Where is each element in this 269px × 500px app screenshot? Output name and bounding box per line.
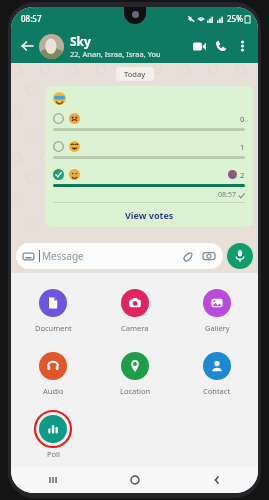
- staticText: 08:57: [218, 190, 236, 200]
- button[interactable]: Camera: [114, 282, 156, 335]
- staticText: Sky: [70, 33, 91, 49]
- staticText: 08:57: [21, 13, 42, 24]
- button[interactable]: Audio: [32, 345, 74, 398]
- staticText: Audio: [43, 386, 64, 396]
- staticText: View votes: [125, 209, 174, 221]
- button[interactable]: Recent apps: [11, 467, 94, 493]
- staticText: 22, Anan, Israa, Israa, You: [70, 49, 161, 59]
- button[interactable]: Attach: [181, 249, 195, 263]
- staticText: Contact: [203, 386, 231, 396]
- staticText: Camera: [121, 323, 149, 333]
- button[interactable]: 0: [45, 86, 253, 227]
- button[interactable]: Home: [94, 467, 176, 493]
- button[interactable]: Poll: [32, 408, 74, 461]
- staticText: 0: [240, 114, 245, 124]
- button[interactable]: View votes: [53, 203, 245, 227]
- staticText: 25%: [227, 13, 243, 24]
- button[interactable]: Call: [210, 35, 232, 57]
- button[interactable]: Contact: [196, 345, 238, 398]
- button[interactable]: Video call: [188, 35, 210, 57]
- staticText: 2: [240, 170, 245, 180]
- button[interactable]: Document: [32, 282, 74, 335]
- button[interactable]: Back: [176, 467, 258, 493]
- staticText: Location: [120, 386, 151, 396]
- staticText: Gallery: [205, 323, 230, 333]
- button[interactable]: Sky: [70, 33, 188, 59]
- button[interactable]: Gallery: [196, 282, 238, 335]
- staticText: 1: [240, 142, 245, 152]
- button[interactable]: Message: [16, 243, 223, 269]
- button[interactable]: Back: [17, 36, 37, 56]
- staticText: Message: [42, 249, 84, 263]
- button[interactable]: Location: [114, 345, 156, 398]
- staticText: Poll: [47, 449, 60, 459]
- button[interactable]: More options: [232, 36, 252, 56]
- staticText: Today: [124, 69, 146, 79]
- staticText: Document: [35, 323, 72, 333]
- button[interactable]: Voice message: [227, 243, 253, 269]
- button[interactable]: Camera: [202, 249, 216, 263]
